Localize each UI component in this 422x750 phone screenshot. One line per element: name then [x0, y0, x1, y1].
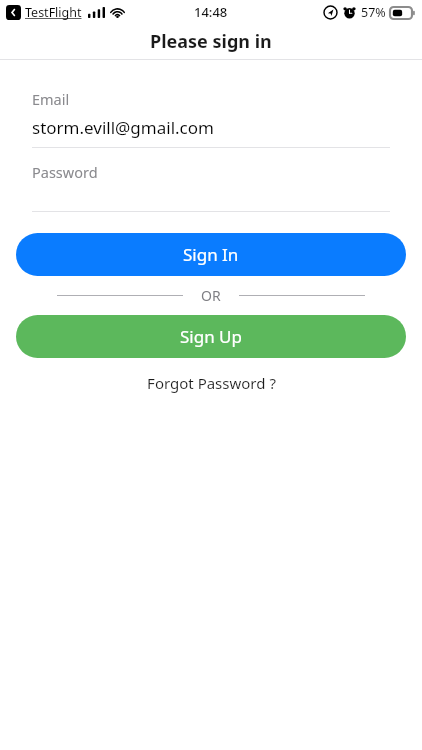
button[interactable]: Sign In — [16, 233, 406, 276]
staticText: 57% — [361, 4, 386, 21]
staticText: Email — [32, 89, 70, 109]
staticText: Forgot Password ? — [147, 373, 276, 393]
staticText: storm.evill@gmail.com — [32, 116, 214, 139]
button[interactable]: Email — [32, 89, 390, 148]
button[interactable]: Sign Up — [16, 315, 406, 358]
button[interactable]: Password — [32, 162, 390, 212]
button[interactable]: Forgot Password ? — [137, 369, 286, 397]
staticText: Sign Up — [180, 325, 242, 348]
staticText: OR — [201, 286, 221, 305]
staticText: Please sign in — [150, 29, 272, 54]
staticText: Password — [32, 162, 98, 182]
staticText: TestFlight — [25, 4, 82, 21]
staticText: Sign In — [183, 243, 239, 266]
staticText: 14:48 — [194, 3, 228, 21]
